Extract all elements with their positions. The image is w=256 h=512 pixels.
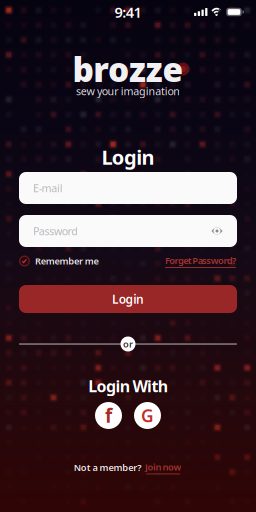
staticText: f	[105, 403, 112, 428]
button[interactable]: Login	[19, 285, 237, 313]
button[interactable]: Forget Password?	[164, 254, 237, 268]
staticText: Remember me	[35, 255, 98, 267]
staticText: or	[123, 338, 133, 350]
staticText: 9:41	[114, 2, 141, 22]
button[interactable]: Log in with Facebook	[95, 402, 122, 429]
staticText: Login	[112, 291, 144, 307]
button[interactable]: Join now	[144, 461, 182, 474]
staticText: Login With	[88, 375, 168, 397]
button[interactable]: Log in with Google	[134, 402, 161, 429]
staticText: sew your imagination	[76, 84, 180, 98]
button[interactable]: Password	[19, 215, 237, 247]
staticText: Join now	[145, 461, 181, 473]
button[interactable]: Remember me	[19, 254, 98, 268]
staticText: E-mail	[33, 181, 63, 195]
staticText: brozze	[72, 47, 183, 91]
staticText: Login	[101, 144, 155, 170]
button[interactable]: E-mail	[19, 172, 237, 204]
staticText: Forget Password?	[165, 254, 236, 266]
staticText: Password	[33, 224, 78, 238]
staticText: G	[141, 404, 154, 427]
staticText: Not a member?	[74, 461, 141, 474]
